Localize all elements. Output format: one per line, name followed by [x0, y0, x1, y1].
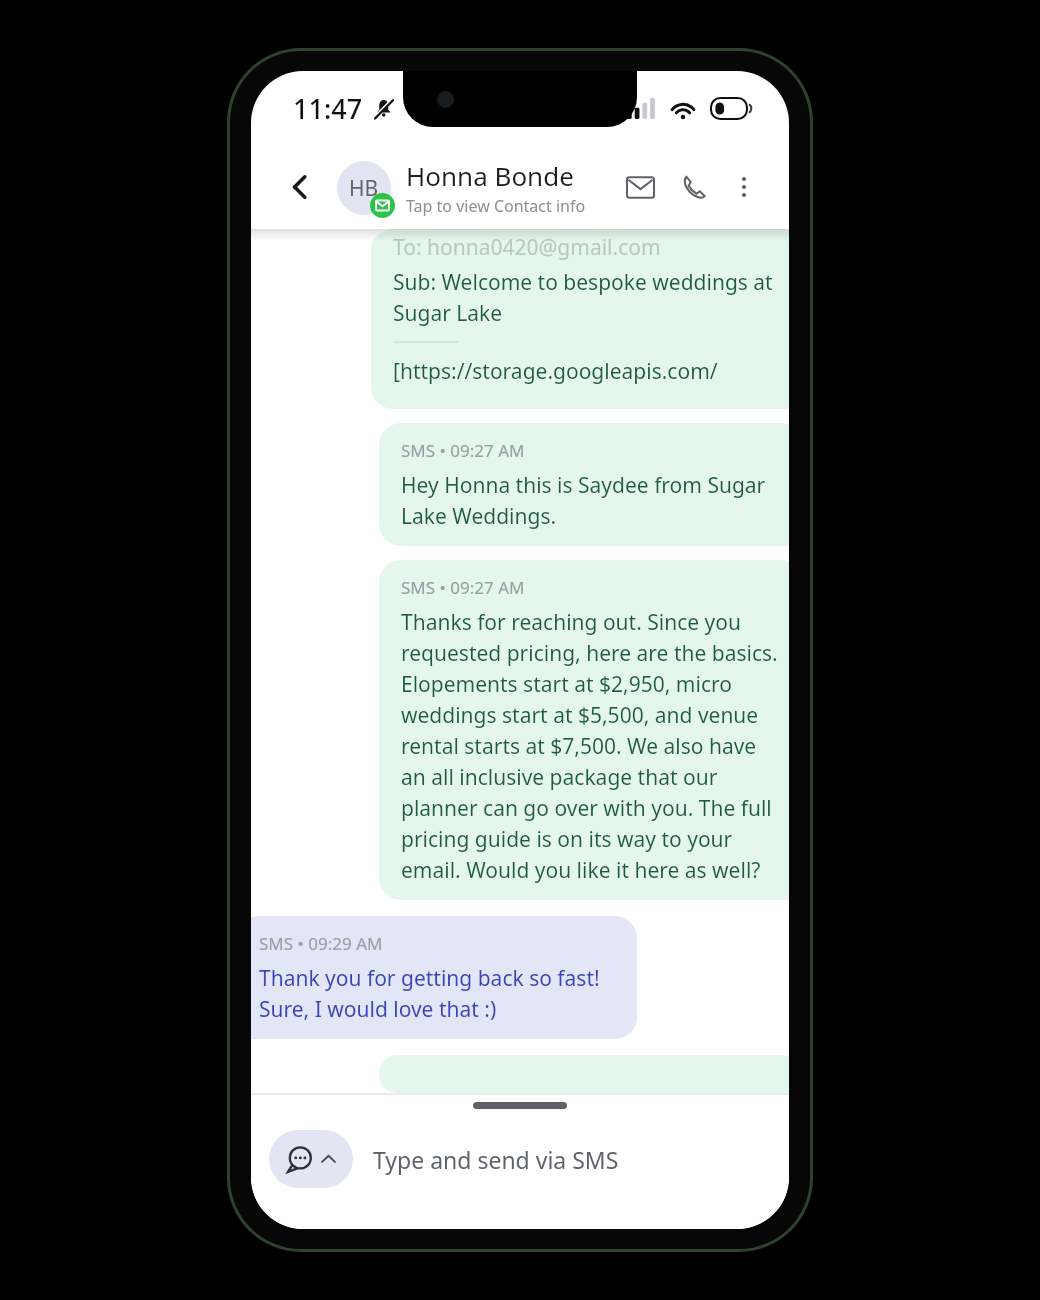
staticText: 11:47: [293, 90, 363, 127]
staticText: Tap to view Contact info: [406, 195, 586, 217]
staticText: To: honna0420@gmail.com: [393, 233, 661, 262]
staticText: Honna Bonde: [406, 158, 574, 193]
staticText: SMS • 09:29 AM: [259, 932, 383, 955]
button[interactable]: Back: [275, 162, 325, 212]
staticText: HB: [349, 174, 379, 203]
staticText: Type and send via SMS: [373, 1144, 619, 1175]
button[interactable]: SMS • 09:27 AM: [379, 560, 789, 900]
button[interactable]: To: honna0420@gmail.com: [371, 229, 789, 409]
staticText: Sub: Welcome to bespoke weddings at Suga…: [393, 268, 781, 327]
staticText: [https://storage.googleapis.com/msgsndr/…: [393, 357, 781, 387]
button[interactable]: HB: [337, 158, 617, 217]
staticText: Hey Honna this is Saydee from Sugar Lake…: [401, 471, 781, 530]
button[interactable]: SMS • 09:27 AM: [379, 423, 789, 546]
staticText: Thanks for reaching out. Since you reque…: [401, 608, 781, 884]
button[interactable]: Email: [617, 164, 663, 210]
staticText: Thank you for getting back so fast! Sure…: [259, 964, 615, 1023]
button[interactable]: Call: [671, 164, 717, 210]
button[interactable]: Type and send via SMS: [373, 1144, 789, 1175]
staticText: SMS • 09:27 AM: [401, 439, 525, 462]
button[interactable]: SMS • 09:29 AM: [251, 916, 637, 1039]
button[interactable]: Choose message type: [269, 1130, 353, 1188]
staticText: SMS • 09:27 AM: [401, 576, 525, 599]
button[interactable]: More options: [721, 164, 767, 210]
